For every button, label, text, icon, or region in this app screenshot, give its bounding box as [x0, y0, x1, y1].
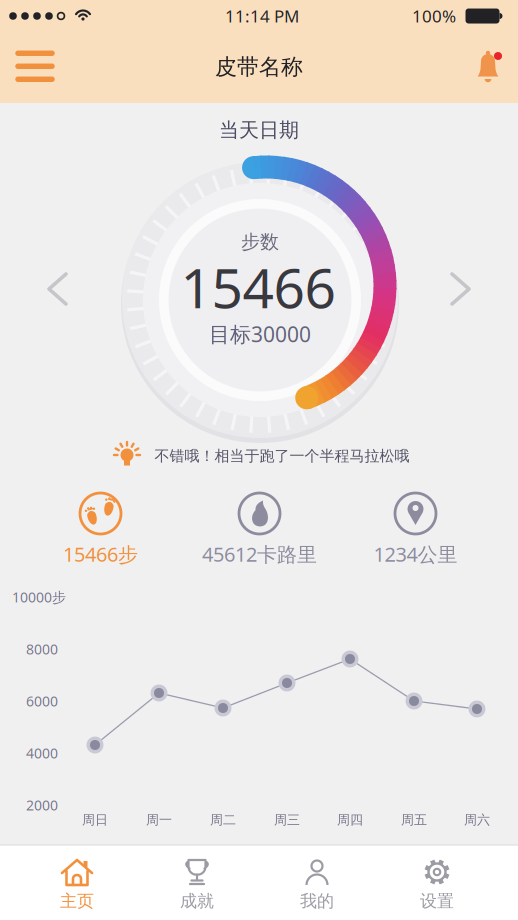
button[interactable]: 主页 [17, 845, 137, 920]
staticText: 目标30000 [209, 320, 311, 348]
button[interactable]: Notifications [473, 46, 505, 88]
button[interactable]: 设置 [377, 845, 497, 920]
button[interactable]: 成就 [137, 845, 257, 920]
staticText: 15466步 [63, 541, 138, 567]
staticText: 皮带名称 [215, 53, 303, 80]
button[interactable]: Menu [12, 47, 58, 85]
staticText: 45612卡路里 [202, 541, 317, 567]
button[interactable]: Previous day [44, 269, 70, 309]
staticText: 步数 [241, 230, 279, 254]
staticText: 15466 [180, 250, 335, 323]
staticText: 当天日期 [219, 118, 299, 142]
staticText: 成就 [180, 891, 214, 911]
staticText: 周三 [274, 812, 300, 828]
staticText: 4000 [26, 744, 58, 762]
staticText: 周五 [401, 812, 427, 828]
staticText: 周日 [82, 812, 108, 828]
staticText: 8000 [26, 640, 58, 658]
staticText: 周四 [337, 812, 363, 828]
button[interactable]: Next day [447, 269, 473, 309]
staticText: 6000 [26, 692, 58, 710]
staticText: 设置 [420, 891, 454, 911]
staticText: 主页 [60, 891, 94, 911]
staticText: 我的 [300, 891, 334, 911]
staticText: 11:14 PM [225, 5, 299, 27]
staticText: 1234公里 [373, 541, 457, 567]
staticText: 周二 [210, 812, 236, 828]
staticText: 周一 [146, 812, 172, 828]
staticText: 周六 [464, 812, 490, 828]
staticText: 不错哦！相当于跑了一个半程马拉松哦 [154, 447, 409, 465]
staticText: 10000步 [12, 588, 66, 606]
button[interactable]: 我的 [257, 845, 377, 920]
staticText: 100% [412, 5, 456, 27]
staticText: 2000 [26, 796, 58, 814]
